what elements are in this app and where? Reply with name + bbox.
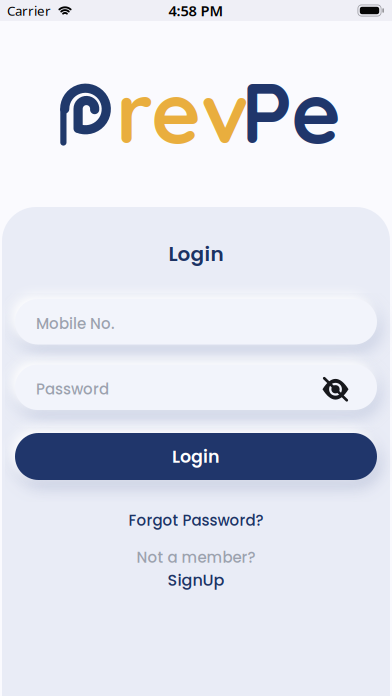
staticText: Pe xyxy=(241,58,341,164)
staticText: SignUp xyxy=(167,569,224,591)
button[interactable]: Forgot Password? xyxy=(128,510,263,531)
staticText: Not a member? xyxy=(136,547,255,568)
staticText: Login xyxy=(172,444,220,469)
staticText: Login xyxy=(168,240,223,268)
button[interactable]: Show password xyxy=(322,378,349,401)
staticText: Forgot Password? xyxy=(128,510,263,531)
button[interactable]: Login xyxy=(15,433,377,480)
button[interactable]: SignUp xyxy=(167,569,224,591)
button[interactable]: Mobile No. xyxy=(15,299,377,344)
button[interactable]: Password xyxy=(15,364,377,410)
staticText: Carrier xyxy=(7,2,51,19)
staticText: Password xyxy=(36,379,109,400)
staticText: rev xyxy=(116,58,249,164)
staticText: 4:58 PM xyxy=(168,1,223,20)
staticText: Mobile No. xyxy=(36,313,115,334)
